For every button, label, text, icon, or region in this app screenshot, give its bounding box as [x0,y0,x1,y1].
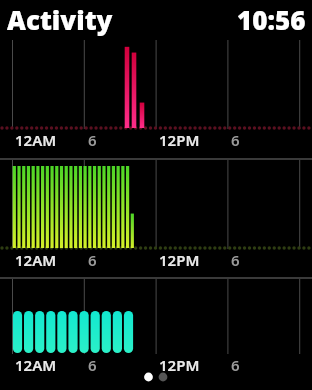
staticText: 12PM [159,355,200,375]
staticText: 6 [88,250,97,270]
staticText: Activity [7,2,113,37]
button[interactable]: Stand chart [0,279,312,390]
staticText: 6 [231,355,240,375]
other: Page indicator [0,0,312,390]
staticText: 12PM [159,130,200,150]
button[interactable]: Move chart [0,40,312,158]
staticText: 6 [231,250,240,270]
staticText: 12AM [15,130,57,150]
staticText: 6 [88,130,97,150]
button[interactable]: Exercise chart [0,160,312,277]
staticText: 10:56 [237,2,306,37]
staticText: 12PM [159,250,200,270]
staticText: 12AM [15,250,57,270]
staticText: 12AM [15,355,57,375]
staticText: 6 [231,130,240,150]
staticText: 6 [88,355,97,375]
